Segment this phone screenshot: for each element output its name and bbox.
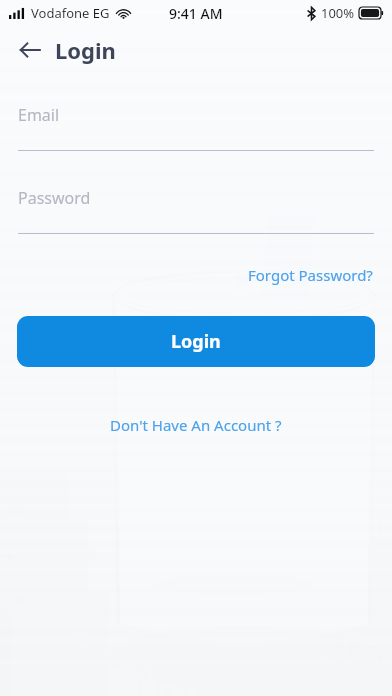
staticText: Forgot Password? (248, 265, 373, 285)
staticText: Vodafone EG (31, 4, 110, 22)
staticText: 9:41 AM (169, 4, 223, 23)
button[interactable]: Login (17, 316, 375, 367)
staticText: Email (18, 104, 60, 126)
staticText: Login (55, 35, 116, 65)
button[interactable]: Back (10, 30, 50, 70)
staticText: Login (171, 329, 221, 354)
staticText: 100% (321, 4, 355, 22)
staticText: Don't Have An Account ? (110, 415, 282, 435)
staticText: Password (18, 187, 91, 209)
button[interactable]: Don't Have An Account ? (104, 411, 288, 439)
button[interactable]: Forgot Password? (246, 261, 375, 289)
